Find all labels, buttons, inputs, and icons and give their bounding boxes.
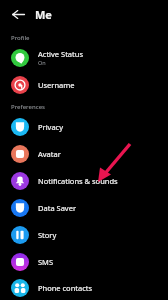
button[interactable]: Data Saver	[0, 194, 168, 221]
button[interactable]: Back	[6, 2, 30, 26]
staticText: Avatar	[38, 149, 61, 159]
button[interactable]: Active Status	[0, 44, 168, 71]
button[interactable]: Phone contacts	[0, 275, 168, 300]
staticText: Data Saver	[38, 203, 77, 213]
staticText: SMS	[38, 257, 54, 267]
staticText: On	[38, 59, 46, 66]
staticText: Notifications & sounds	[38, 176, 118, 186]
button[interactable]: Privacy	[0, 113, 168, 140]
staticText: Story	[38, 230, 57, 240]
staticText: Preferences	[11, 103, 46, 111]
staticText: Active Status	[38, 49, 83, 59]
staticText: Profile	[11, 34, 30, 42]
staticText: Privacy	[38, 122, 64, 132]
button[interactable]: Username	[0, 71, 168, 98]
button[interactable]: Story	[0, 221, 168, 248]
button[interactable]: SMS	[0, 248, 168, 275]
staticText: Me	[35, 7, 52, 22]
staticText: Phone contacts	[38, 283, 93, 293]
button[interactable]: Avatar	[0, 140, 168, 167]
button[interactable]: Notifications & sounds	[0, 167, 168, 194]
staticText: Username	[38, 80, 75, 90]
